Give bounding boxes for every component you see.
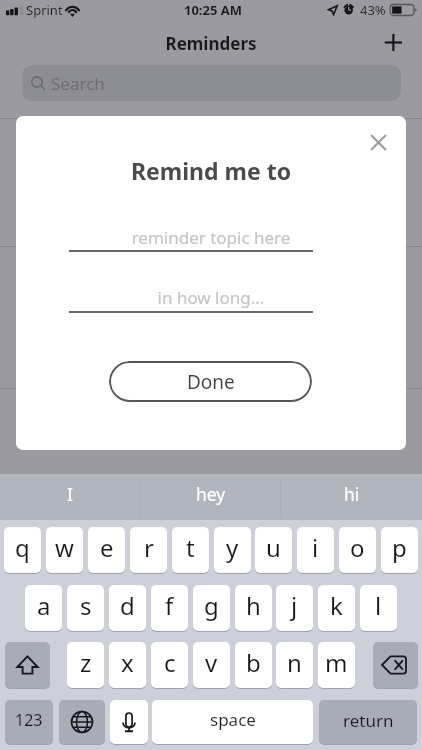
staticText: 123 — [15, 709, 43, 731]
button[interactable]: t — [172, 527, 209, 573]
button[interactable]: m — [318, 642, 355, 688]
button[interactable]: reminder topic here — [16, 226, 406, 252]
button[interactable]: h — [235, 585, 272, 631]
button[interactable]: a — [25, 585, 62, 631]
button[interactable]: Change keyboard — [59, 700, 105, 744]
button[interactable]: x — [109, 642, 146, 688]
button[interactable]: r — [130, 527, 167, 573]
button[interactable]: hi — [281, 474, 422, 520]
staticText: Reminders — [0, 32, 422, 55]
button[interactable]: b — [235, 642, 272, 688]
staticText: reminder topic here — [16, 226, 406, 249]
button[interactable]: y — [214, 527, 251, 573]
staticText: hey — [196, 482, 226, 506]
button[interactable]: k — [318, 585, 355, 631]
staticText: u — [266, 531, 281, 564]
button[interactable]: i — [297, 527, 334, 573]
staticText: s — [80, 589, 92, 622]
button[interactable]: l — [360, 585, 397, 631]
staticText: return — [343, 709, 394, 732]
staticText: m — [325, 646, 348, 679]
staticText: y — [226, 531, 239, 564]
staticText: z — [80, 646, 92, 679]
staticText: h — [246, 589, 261, 622]
staticText: i — [312, 531, 319, 564]
button[interactable]: Add reminder — [377, 26, 410, 59]
button[interactable]: in how long... — [16, 286, 406, 312]
button[interactable]: Dictate — [110, 700, 148, 744]
staticText: Done — [187, 369, 235, 395]
staticText: I — [67, 482, 73, 506]
staticText: w — [55, 531, 74, 564]
staticText: hi — [344, 482, 360, 506]
staticText: Sprint — [26, 1, 63, 19]
staticText: Remind me to — [16, 155, 406, 186]
staticText: r — [144, 531, 154, 564]
button[interactable]: e — [88, 527, 125, 573]
staticText: b — [246, 646, 261, 679]
staticText: g — [204, 589, 219, 622]
button[interactable]: w — [46, 527, 83, 573]
staticText: 43% — [360, 1, 386, 19]
button[interactable]: I — [0, 474, 140, 520]
button[interactable]: q — [4, 527, 41, 573]
button[interactable]: p — [381, 527, 418, 573]
button[interactable]: j — [276, 585, 313, 631]
button[interactable]: s — [67, 585, 104, 631]
staticText: l — [375, 589, 382, 622]
staticText: p — [392, 531, 407, 564]
button[interactable]: z — [67, 642, 104, 688]
staticText: n — [287, 646, 302, 679]
button[interactable]: c — [151, 642, 188, 688]
button[interactable]: f — [151, 585, 188, 631]
button[interactable]: space — [152, 700, 313, 744]
staticText: j — [291, 589, 298, 622]
staticText: f — [165, 589, 174, 622]
button[interactable]: d — [109, 585, 146, 631]
staticText: o — [350, 531, 365, 564]
button[interactable]: Search — [22, 65, 401, 101]
button[interactable]: o — [339, 527, 376, 573]
staticText: v — [205, 646, 218, 679]
staticText: 10:25 AM — [184, 1, 243, 19]
button[interactable]: Shift — [5, 642, 50, 688]
staticText: k — [330, 589, 343, 622]
button[interactable]: n — [276, 642, 313, 688]
staticText: t — [186, 531, 195, 564]
button[interactable]: g — [193, 585, 230, 631]
staticText: c — [164, 646, 176, 679]
staticText: a — [37, 589, 51, 622]
button[interactable]: return — [319, 700, 417, 744]
staticText: space — [210, 708, 256, 731]
button[interactable]: Backspace — [373, 642, 418, 688]
staticText: x — [121, 646, 134, 679]
staticText: in how long... — [16, 286, 406, 309]
button[interactable]: u — [255, 527, 292, 573]
button[interactable]: hey — [140, 474, 281, 520]
staticText: e — [100, 531, 114, 564]
button[interactable]: 123 — [5, 700, 53, 744]
staticText: q — [15, 531, 30, 564]
button[interactable]: Close — [362, 126, 395, 159]
staticText: d — [120, 589, 135, 622]
button[interactable]: Done — [109, 361, 312, 402]
staticText: Search — [51, 72, 105, 95]
button[interactable]: v — [193, 642, 230, 688]
